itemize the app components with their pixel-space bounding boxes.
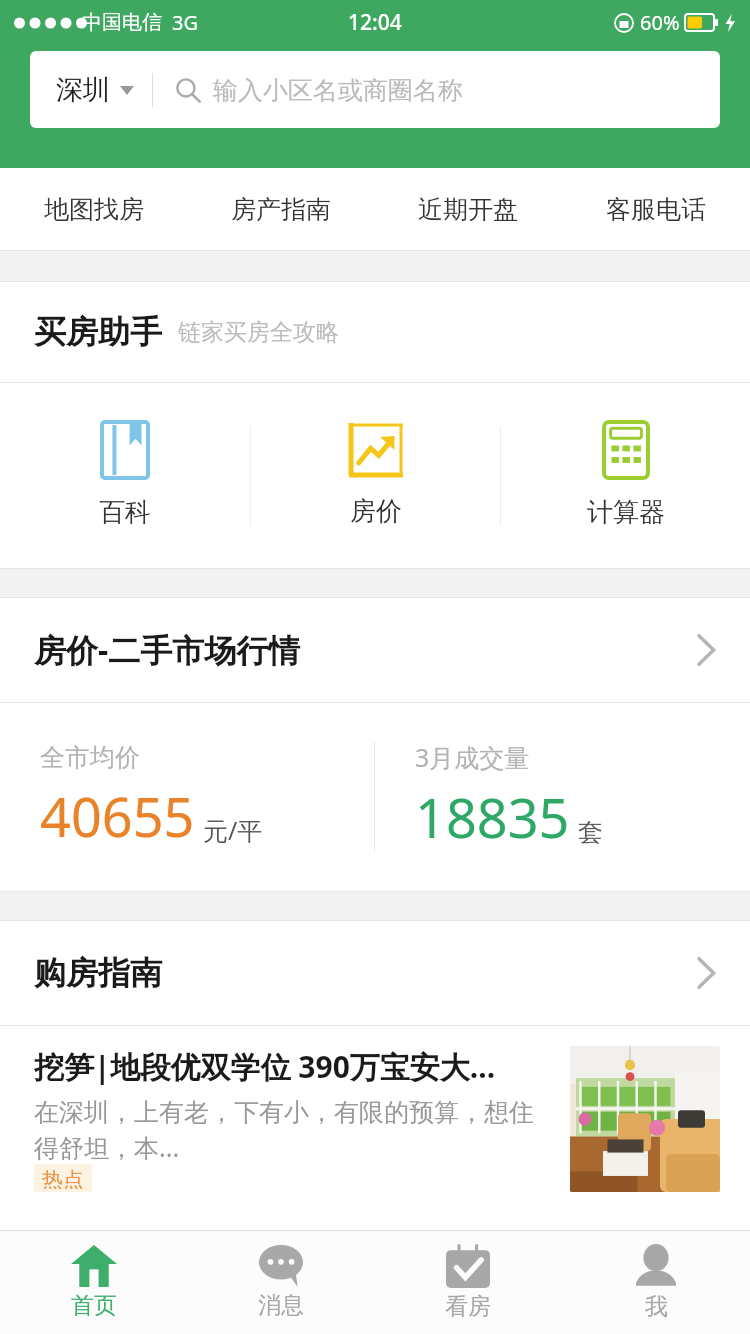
staticText: 房价-二手市场行情 [34,628,301,672]
staticText: 元/平 [203,813,263,847]
staticText: 客服电话 [606,194,706,225]
button[interactable]: 购房指南 [0,921,750,1025]
staticText: 购房指南 [34,953,162,993]
staticText: 深圳 [56,73,110,107]
button[interactable]: 消息 [187,1231,374,1334]
staticText: 热点 [42,1167,84,1189]
staticText: 套 [578,817,603,848]
staticText: 18835 [415,780,570,854]
staticText: 60% [640,9,680,36]
staticText: 链家买房全攻略 [178,318,339,347]
button[interactable]: 客服电话 [562,168,750,250]
button[interactable]: 计算器 [501,383,750,568]
button[interactable]: 房产指南 [187,168,374,250]
staticText: 3G [172,9,198,36]
button[interactable]: 房价-二手市场行情 [0,598,750,702]
button[interactable]: 深圳 [30,51,720,128]
button[interactable]: 地图找房 [0,168,187,250]
staticText: 中国电信 [82,10,162,35]
staticText: 房价 [350,495,402,528]
staticText: 看房 [445,1292,491,1321]
staticText: 计算器 [587,496,665,529]
staticText: 挖笋|地段优双学位 390万宝安大... [34,1046,496,1087]
staticText: 输入小区名或商圈名称 [213,75,463,106]
staticText: 地图找房 [44,194,144,225]
staticText: 买房助手 [34,312,162,352]
staticText: 房产指南 [231,194,331,225]
staticText: 全市均价 [40,742,140,773]
staticText: 首页 [71,1291,117,1320]
button[interactable]: 挖笋|地段优双学位 390万宝安大... [0,1026,750,1206]
staticText: 3月成交量 [415,740,530,774]
button[interactable]: 百科 [0,383,250,568]
staticText: 我 [645,1292,668,1321]
staticText: 12:04 [348,8,402,37]
staticText: 近期开盘 [418,194,518,225]
staticText: 百科 [99,496,151,529]
button[interactable]: 看房 [374,1231,562,1334]
staticText: 在深圳，上有老，下有小，有限的预算，想住得舒坦，本... [34,1097,546,1164]
button[interactable]: 首页 [0,1231,187,1334]
button[interactable]: 房价 [251,383,500,568]
staticText: 消息 [258,1291,304,1320]
staticText: 40655 [40,779,195,853]
button[interactable]: 3月成交量 [375,703,750,891]
button[interactable]: 买房助手 [0,282,750,382]
button[interactable]: 全市均价 [0,703,374,891]
button[interactable]: 我 [562,1231,750,1334]
button[interactable]: 近期开盘 [374,168,562,250]
